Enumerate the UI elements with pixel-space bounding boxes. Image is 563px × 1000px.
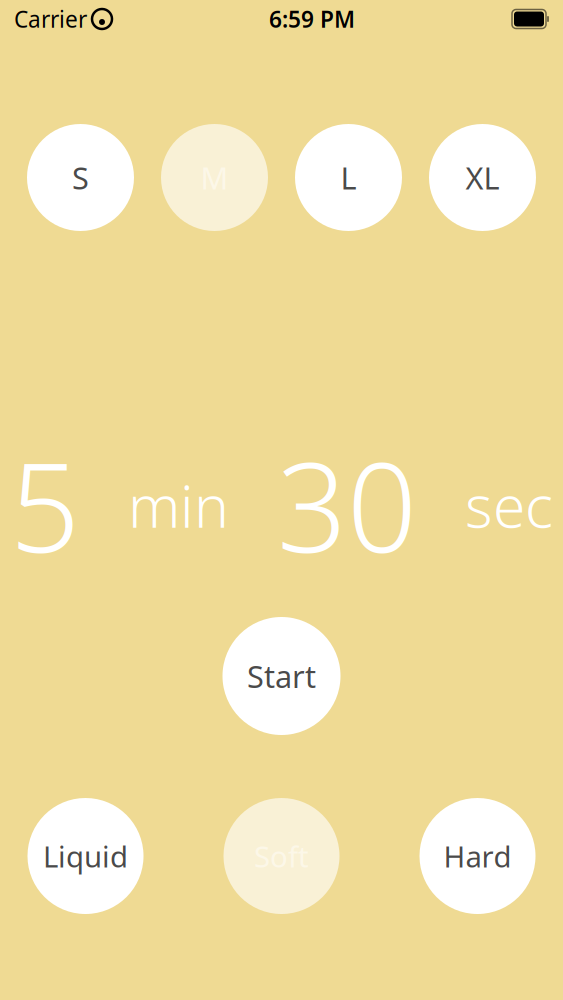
button[interactable]: S [27,93,134,262]
staticText: sec [465,466,553,544]
staticText: Hard [443,836,511,875]
staticText: min [128,466,229,544]
staticText: 6:59 PM [269,4,355,34]
staticText: S [72,157,89,198]
button[interactable]: Soft [223,798,339,914]
button[interactable]: XL [429,93,536,262]
button[interactable]: Liquid [27,798,143,914]
button[interactable]: Hard [419,798,535,914]
staticText: Soft [254,836,309,875]
button[interactable]: Start [222,617,340,735]
button[interactable]: L [295,93,402,262]
staticText: Start [247,656,316,696]
staticText: 30 [277,424,417,586]
staticText: Liquid [43,836,128,875]
staticText: L [340,157,356,198]
staticText: 5 [10,424,80,586]
staticText: M [200,157,228,198]
staticText: Carrier [14,4,87,34]
button[interactable]: M [161,93,268,262]
staticText: XL [465,157,499,198]
